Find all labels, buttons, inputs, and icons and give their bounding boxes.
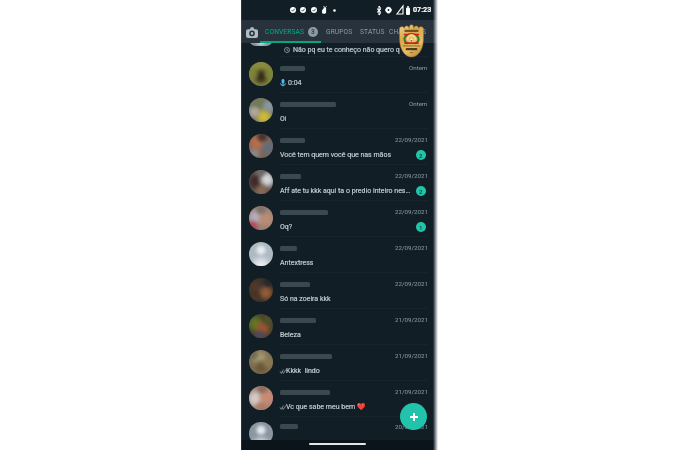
staticText: 2 (419, 152, 423, 159)
staticText: Kkkk lindo (286, 367, 320, 375)
staticText: Não pq eu te conheço não quero q (293, 46, 400, 54)
staticText: Você tem quem você que nas mãos (280, 151, 392, 159)
button[interactable]: Aff ate tu kkk aqui ta o predio inteiro … (241, 165, 438, 201)
staticText: 22/09/2021 (395, 244, 428, 251)
staticText: Beleza (280, 331, 301, 339)
button[interactable]: Oi (241, 93, 438, 129)
staticText: 3 (311, 28, 315, 36)
button[interactable]: Não pq eu te conheço não quero q (241, 43, 438, 57)
button[interactable]: CHAMADAS (389, 22, 427, 41)
staticText: 22/09/2021 (395, 172, 428, 179)
staticText: 21/09/2021 (395, 388, 428, 395)
staticText: GRUPOS (326, 28, 353, 36)
staticText: 2 (419, 188, 423, 195)
button[interactable]: 0:04 (241, 57, 438, 93)
staticText: STATUS (360, 28, 385, 36)
staticText: Ontem (409, 100, 428, 107)
button[interactable]: 20/09/2021 (241, 417, 438, 440)
staticText: CHAMADAS (389, 28, 427, 36)
button[interactable]: Vc que sabe meu bem ❤️ (241, 381, 438, 417)
staticText: Ontem (409, 64, 428, 71)
staticText: 0:04 (288, 79, 302, 87)
staticText: 1 (419, 224, 423, 231)
button[interactable]: Kkkk lindo (241, 345, 438, 381)
button[interactable]: Nova conversa (400, 403, 427, 430)
button[interactable]: Beleza (241, 309, 438, 345)
staticText: 20/09/2021 (395, 423, 428, 430)
button[interactable]: Só na zoeira kkk (241, 273, 438, 309)
button[interactable]: GRUPOS (326, 22, 353, 41)
staticText: Oq? (280, 223, 293, 231)
staticText: 21/09/2021 (395, 316, 428, 323)
button[interactable]: Oq? (241, 201, 438, 237)
staticText: Só na zoeira kkk (280, 295, 331, 303)
staticText: 22/09/2021 (395, 136, 428, 143)
staticText: 21/09/2021 (395, 352, 428, 359)
staticText: Vc que sabe meu bem ❤️ (286, 403, 366, 411)
staticText: 07:23 (413, 5, 432, 13)
staticText: CONVERSAS (265, 28, 305, 36)
button[interactable]: Você tem quem você que nas mãos (241, 129, 438, 165)
staticText: 22/09/2021 (395, 208, 428, 215)
button[interactable]: Antextress (241, 237, 438, 273)
button[interactable]: STATUS (360, 22, 385, 41)
button[interactable]: Camera (244, 24, 260, 40)
staticText: 22/09/2021 (395, 280, 428, 287)
button[interactable]: CONVERSAS (265, 22, 318, 41)
staticText: Aff ate tu kkk aqui ta o predio inteiro … (280, 187, 411, 195)
staticText: Oi (280, 115, 287, 123)
staticText: Antextress (280, 259, 314, 267)
